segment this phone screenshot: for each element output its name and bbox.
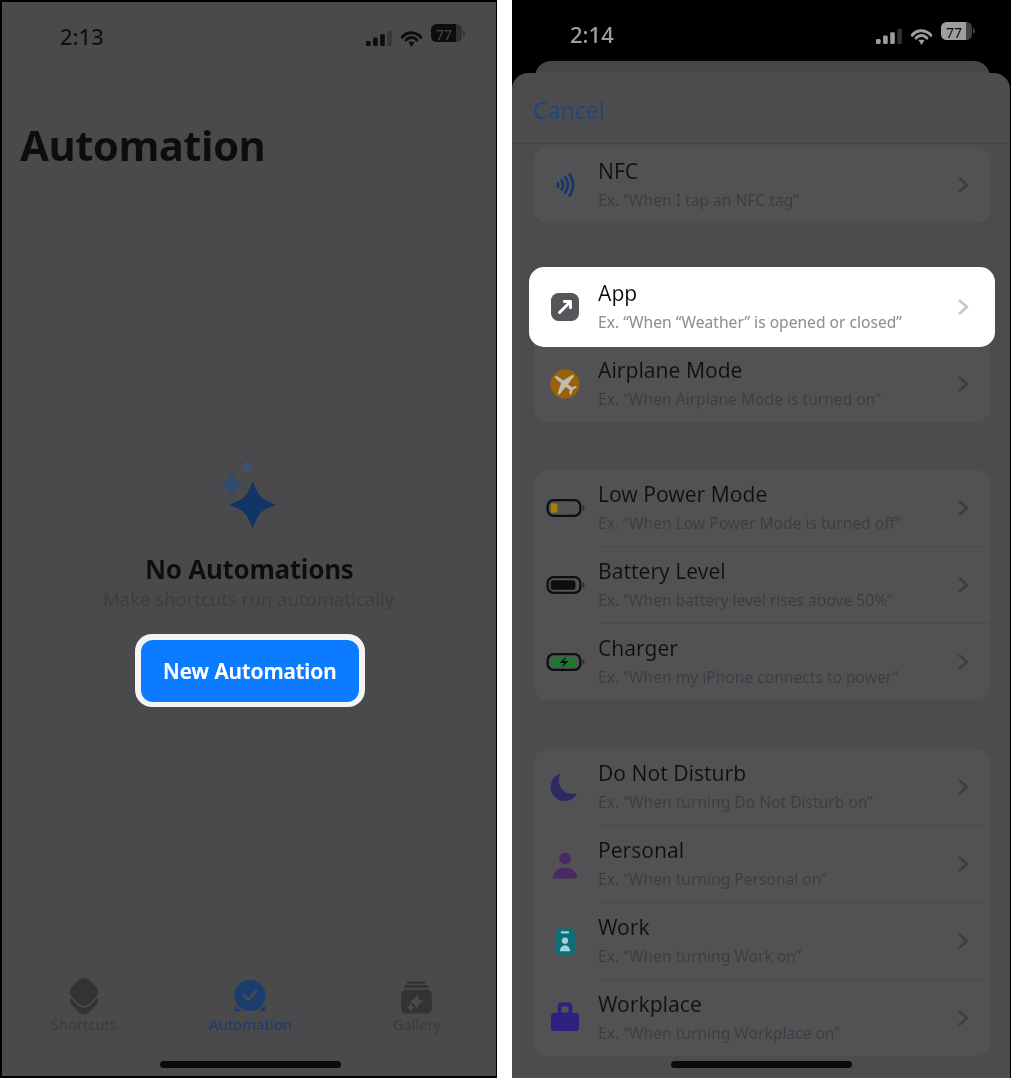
staticText: 2:13 — [60, 21, 104, 51]
staticText: Ex. “When my iPhone connects to power” — [598, 666, 899, 687]
staticText: Ex. “When turning Workplace on” — [598, 1022, 840, 1043]
button[interactable]: Low Power Mode — [534, 470, 990, 546]
staticText: Gallery — [393, 1014, 442, 1034]
staticText: Ex. “When Low Power Mode is turned off” — [598, 512, 902, 533]
button[interactable]: Personal — [534, 826, 990, 902]
button[interactable]: Work — [534, 903, 990, 979]
staticText: No Automations — [145, 551, 354, 586]
staticText: Do Not Disturb — [598, 759, 747, 788]
button[interactable]: Do Not Disturb — [534, 749, 990, 825]
staticText: Ex. “When battery level rises above 50%” — [598, 589, 893, 610]
staticText: Ex. “When turning Personal on” — [598, 868, 827, 889]
staticText: Ex. “When Airplane Mode is turned on” — [598, 388, 881, 409]
staticText: 77 — [946, 23, 963, 40]
button[interactable]: Airplane Mode — [534, 346, 990, 422]
button[interactable]: Shortcuts — [39, 970, 129, 1034]
button[interactable]: Charger — [534, 624, 990, 700]
button[interactable]: Gallery — [372, 970, 462, 1034]
staticText: Personal — [598, 836, 685, 865]
staticText: 2:14 — [570, 19, 614, 49]
staticText: Ex. “When turning Work on” — [598, 945, 802, 966]
staticText: New Automation — [163, 657, 337, 686]
staticText: 77 — [436, 25, 453, 42]
staticText: Automation — [20, 116, 266, 173]
staticText: Low Power Mode — [598, 480, 768, 509]
staticText: Battery Level — [598, 557, 726, 586]
staticText: Shortcuts — [51, 1014, 117, 1034]
staticText: Ex. “When turning Do Not Disturb on” — [598, 791, 873, 812]
staticText: Make shortcuts run automatically — [103, 586, 395, 611]
button[interactable]: Battery Level — [534, 547, 990, 623]
button[interactable]: Workplace — [534, 980, 990, 1056]
button[interactable]: Automation — [205, 970, 295, 1034]
staticText: NFC — [598, 157, 639, 186]
button[interactable]: New Automation — [141, 640, 359, 702]
staticText: Automation — [209, 1014, 292, 1034]
button[interactable]: Cancel — [529, 88, 609, 131]
button[interactable]: App — [529, 267, 995, 347]
staticText: Cancel — [533, 94, 605, 125]
staticText: Ex. “When “Weather” is opened or closed” — [598, 311, 902, 332]
staticText: Airplane Mode — [598, 356, 743, 385]
button[interactable]: NFC — [534, 147, 990, 223]
staticText: App — [598, 279, 638, 308]
staticText: Charger — [598, 634, 678, 663]
staticText: Ex. “When I tap an NFC tag” — [598, 189, 799, 210]
staticText: Workplace — [598, 990, 702, 1019]
staticText: Work — [598, 913, 650, 942]
